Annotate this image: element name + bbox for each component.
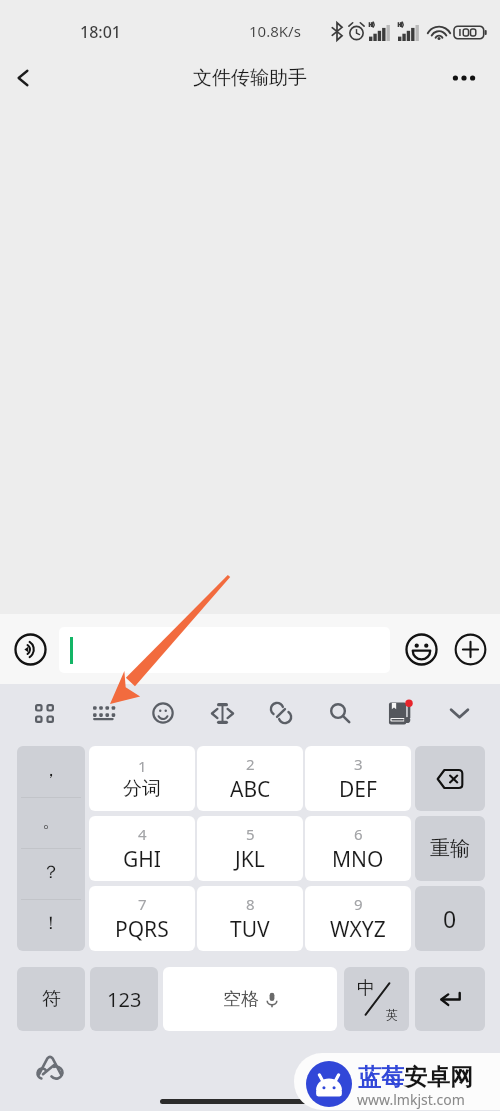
button[interactable]: 6 — [305, 816, 411, 881]
button[interactable]: Collapse keyboard — [436, 691, 482, 735]
button[interactable]: Search — [317, 691, 363, 735]
staticText: 。 — [42, 810, 60, 833]
button[interactable]: Input method settings — [30, 1050, 70, 1084]
button[interactable]: 4 — [89, 816, 195, 881]
button[interactable]: Back — [0, 55, 46, 101]
staticText: 8 — [246, 894, 255, 914]
button[interactable]: 0 — [415, 886, 485, 951]
staticText: 分词 — [123, 777, 161, 801]
button[interactable]: Text cursor — [199, 691, 245, 735]
button[interactable]: 中 — [344, 967, 409, 1031]
button[interactable]: 空格 — [163, 967, 337, 1031]
staticText: 0 — [443, 903, 457, 934]
staticText: WXYZ — [330, 915, 386, 944]
staticText: 文件传输助手 — [193, 66, 307, 90]
button[interactable]: ？ — [17, 849, 85, 900]
staticText: 18:01 — [80, 21, 121, 43]
staticText: 7 — [138, 894, 147, 914]
staticText: www.lmkjst.com — [357, 1090, 465, 1109]
staticText: 123 — [107, 986, 142, 1013]
button[interactable]: Emoji — [401, 629, 441, 669]
button[interactable]: 123 — [90, 967, 158, 1031]
button[interactable]: 重输 — [415, 816, 485, 881]
button[interactable]: 8 — [197, 886, 303, 951]
staticText: 10.8K/s — [249, 21, 301, 41]
staticText: GHI — [123, 845, 161, 874]
staticText: ， — [42, 759, 60, 782]
button[interactable]: 7 — [89, 886, 195, 951]
staticText: TUV — [230, 915, 270, 944]
button[interactable]: Dictionary — [377, 691, 423, 735]
staticText: MNO — [332, 845, 384, 874]
staticText: 4 — [138, 824, 147, 844]
button[interactable]: 1 — [89, 746, 195, 811]
button[interactable]: Clipboard — [258, 691, 304, 735]
button[interactable] — [59, 627, 390, 673]
button[interactable]: 符 — [17, 967, 85, 1031]
staticText: 1 — [138, 756, 147, 776]
button[interactable]: 5 — [197, 816, 303, 881]
staticText: 重输 — [430, 836, 470, 861]
staticText: 中 — [357, 977, 375, 1000]
other: Enter — [415, 967, 485, 1031]
staticText: PQRS — [115, 915, 169, 944]
button[interactable]: 3 — [305, 746, 411, 811]
button[interactable]: Add attachment — [450, 629, 490, 669]
button[interactable]: Keyboard layout — [80, 691, 126, 735]
button[interactable]: 。 — [17, 798, 85, 849]
staticText: JKL — [235, 845, 265, 874]
staticText: 2 — [246, 754, 255, 774]
button[interactable]: 9 — [305, 886, 411, 951]
staticText: 5 — [246, 824, 255, 844]
button[interactable]: ， — [17, 746, 85, 798]
staticText: ！ — [42, 912, 60, 935]
staticText: 符 — [42, 987, 61, 1011]
button[interactable]: Emoji — [140, 691, 186, 735]
staticText: DEF — [339, 775, 377, 804]
button[interactable]: Backspace — [415, 746, 485, 811]
button[interactable]: Enter — [415, 967, 485, 1031]
button[interactable]: ！ — [17, 900, 85, 951]
staticText: 英 — [386, 1007, 398, 1022]
staticText: 6 — [354, 824, 363, 844]
staticText: 安卓网 — [404, 1063, 473, 1092]
button[interactable]: More options — [441, 55, 487, 101]
button[interactable]: Voice input — [10, 629, 50, 669]
staticText: 空格 — [223, 988, 259, 1011]
staticText: 蓝莓 — [358, 1063, 404, 1092]
staticText: ABC — [230, 775, 271, 804]
staticText: 9 — [354, 894, 363, 914]
staticText: ？ — [42, 861, 60, 884]
button[interactable]: 2 — [197, 746, 303, 811]
button[interactable]: Apps — [21, 691, 67, 735]
staticText: 3 — [354, 754, 363, 774]
